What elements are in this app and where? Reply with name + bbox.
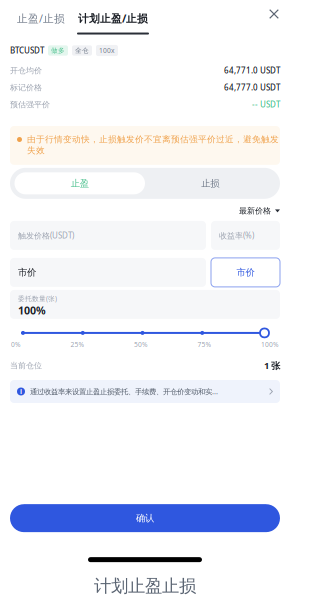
button[interactable]: 计划止盈/止损	[74, 0, 152, 34]
button[interactable]: 最新价格	[239, 202, 280, 220]
staticText: 计划止盈止损	[94, 575, 196, 597]
staticText: i	[20, 387, 22, 396]
staticText: 25%	[70, 340, 84, 349]
staticText: 100%	[18, 303, 46, 317]
staticText: 100%	[261, 340, 279, 349]
button[interactable]: 收益率(%)	[211, 221, 280, 250]
staticText: 预估强平价	[10, 99, 50, 110]
staticText: 标记价格	[10, 82, 42, 93]
staticText: 0%	[11, 340, 21, 349]
staticText: -- USDT	[252, 99, 280, 110]
staticText: 市价	[236, 266, 254, 278]
staticText: 100x	[99, 46, 115, 55]
staticText: 收益率(%)	[219, 230, 254, 241]
button[interactable]: 止盈	[14, 172, 145, 194]
staticText: 当前仓位	[10, 360, 42, 371]
staticText: 市价	[18, 266, 36, 278]
button[interactable]: 确认	[10, 504, 280, 532]
staticText: 开仓均价	[10, 65, 42, 76]
staticText: 委托数量(张)	[18, 294, 57, 303]
staticText: 止盈	[71, 177, 89, 189]
staticText: 1 张	[264, 359, 280, 372]
staticText: 确认	[136, 512, 154, 524]
staticText: 触发价格(USDT)	[18, 230, 74, 241]
staticText: 64,777.0 USDT	[224, 82, 280, 93]
button[interactable]: 市价	[10, 258, 206, 287]
button[interactable]: 止盈/止损	[13, 0, 69, 40]
button[interactable]: 触发价格(USDT)	[10, 221, 206, 250]
staticText: 最新价格	[239, 206, 271, 216]
staticText: 64,771.0 USDT	[224, 65, 280, 76]
staticText: 75%	[197, 340, 211, 349]
button[interactable]: 关闭	[261, 0, 280, 27]
button[interactable]: 市价	[211, 258, 280, 287]
staticText: 全仓	[75, 46, 89, 55]
button[interactable]: i	[10, 372, 280, 403]
staticText: 50%	[134, 340, 148, 349]
staticText: 止损	[201, 177, 219, 189]
staticText: 由于行情变动快，止损触发价不宜离预估强平价过近，避免触发失效	[27, 134, 279, 156]
staticText: 止盈/止损	[17, 11, 65, 25]
button[interactable]: 止损	[145, 172, 275, 194]
staticText: 计划止盈/止损	[78, 11, 148, 25]
staticText: BTCUSDT	[10, 45, 44, 56]
staticText: 做多	[51, 46, 65, 55]
staticText: 通过收益率来设置止盈止损委托、手续费、开仓价变动和实...	[30, 386, 218, 396]
